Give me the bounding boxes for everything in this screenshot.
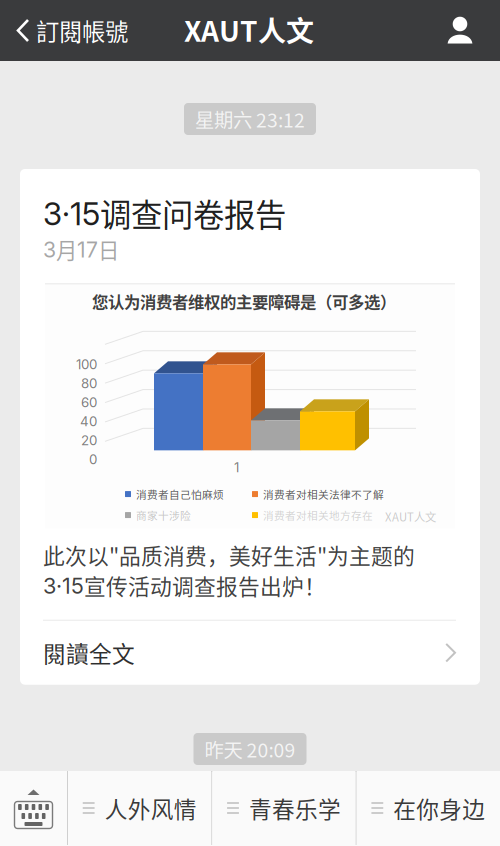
staticText: 0 — [89, 451, 97, 467]
staticText: 3月17日 — [43, 234, 119, 264]
staticText: 訂閱帳號 — [36, 14, 128, 47]
staticText: 您认为消费者维权的主要障碍是（可多选） — [92, 289, 396, 313]
staticText: XAUT人文 — [385, 508, 436, 525]
staticText: 3·15调查问卷报告 — [43, 191, 286, 235]
staticText: 閱讀全文 — [43, 636, 135, 669]
staticText: 在你身边 — [393, 792, 485, 824]
button[interactable]: Keyboard — [0, 771, 67, 845]
staticText: 昨天 20:09 — [204, 735, 295, 763]
staticText: 20 — [81, 432, 97, 448]
staticText: 此次以"品质消费，美好生活"为主题的 3·15宣传活动调查报告出炉！ — [43, 539, 415, 601]
staticText: 消费者自己怕麻烦 — [136, 486, 224, 502]
staticText: 100 — [76, 356, 97, 372]
button[interactable]: 人外风情 — [68, 771, 211, 845]
staticText: 1 — [234, 459, 239, 475]
button[interactable]: 青春乐学 — [212, 771, 356, 845]
button[interactable]: 在你身边 — [357, 771, 500, 845]
staticText: 40 — [80, 413, 97, 429]
staticText: 80 — [81, 375, 97, 391]
staticText: XAUT人文 — [184, 9, 314, 50]
button[interactable]: 訂閱帳號 — [0, 0, 140, 61]
staticText: 消费者对相关法律不了解 — [263, 486, 384, 502]
staticText: 人外风情 — [105, 792, 197, 824]
staticText: 消费者对相关地方存在 — [263, 507, 373, 523]
staticText: 60 — [81, 394, 97, 410]
staticText: 星期六 23:12 — [195, 105, 305, 133]
button[interactable]: 閱讀全文 — [20, 621, 480, 685]
button[interactable]: Account — [447, 0, 500, 61]
staticText: 商家十涉险 — [136, 507, 191, 523]
staticText: 青春乐学 — [249, 792, 341, 824]
